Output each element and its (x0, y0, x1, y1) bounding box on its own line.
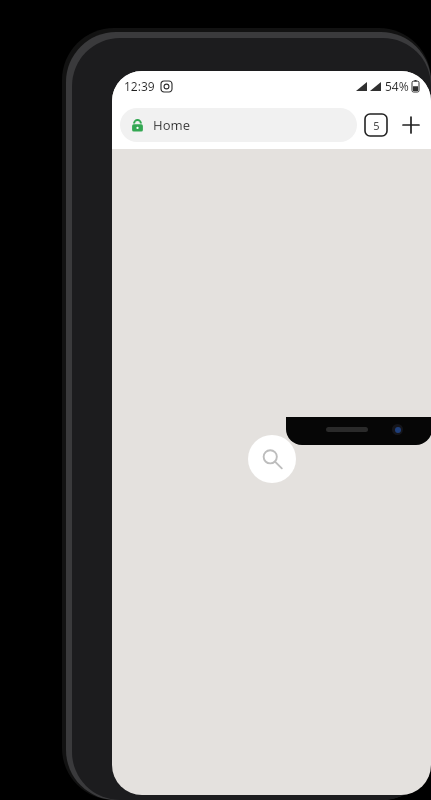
staticText: Home (153, 116, 190, 134)
staticText: 5 (373, 118, 380, 133)
button[interactable]: Tabs (365, 114, 387, 136)
button[interactable]: Home (120, 108, 357, 142)
staticText: 54% (385, 78, 409, 94)
button[interactable]: New tab (397, 111, 425, 139)
staticText: 12:39 (124, 78, 155, 94)
button[interactable]: Search (248, 435, 296, 483)
